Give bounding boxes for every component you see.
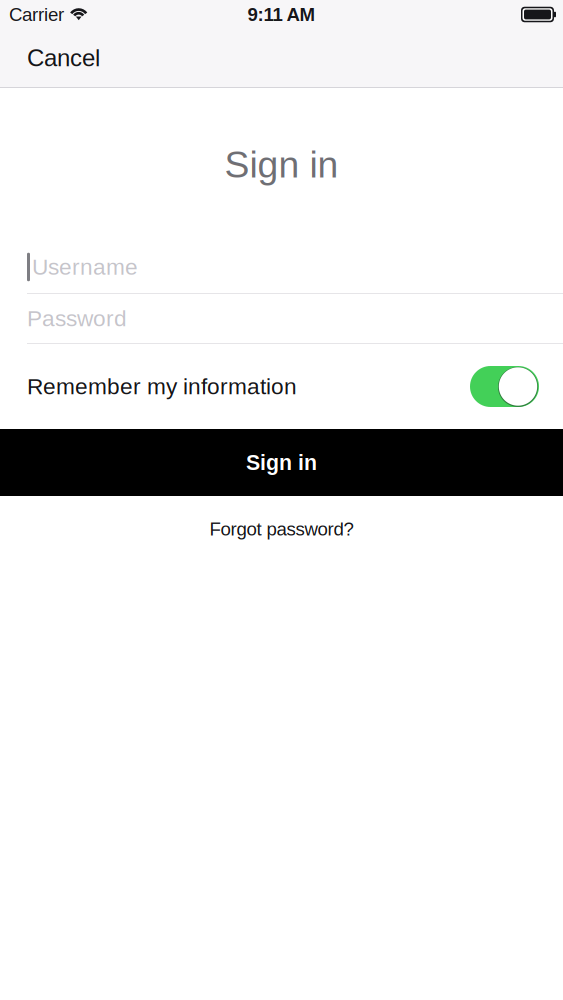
staticText: Cancel <box>27 45 100 71</box>
staticText: Sign in <box>246 451 317 474</box>
button[interactable]: Username <box>0 241 563 293</box>
staticText: Username <box>32 254 138 280</box>
button[interactable]: Sign in <box>0 429 563 496</box>
staticText: Remember my information <box>27 374 297 399</box>
staticText: 9:11 AM <box>247 4 315 25</box>
button[interactable]: Forgot password? <box>0 496 563 562</box>
staticText: Password <box>27 306 127 331</box>
staticText: Carrier <box>9 4 64 25</box>
staticText: Sign in <box>224 144 338 185</box>
button[interactable]: Cancel <box>0 29 127 87</box>
button[interactable]: Remember my information <box>470 366 539 407</box>
button[interactable]: Password <box>0 294 563 343</box>
staticText: Forgot password? <box>209 519 353 539</box>
